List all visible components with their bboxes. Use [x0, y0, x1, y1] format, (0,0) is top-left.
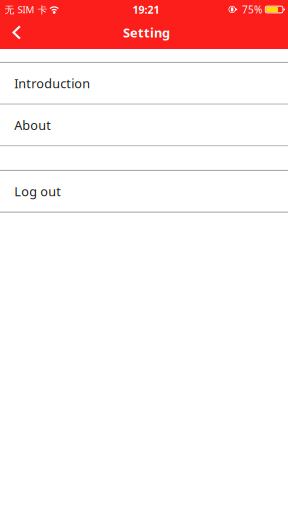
staticText: 75% [242, 3, 262, 16]
button[interactable]: Log out [0, 171, 288, 212]
staticText: Introduction [14, 75, 90, 92]
staticText: 19:21 [132, 2, 159, 17]
staticText: About [14, 116, 51, 134]
staticText: Log out [14, 183, 61, 200]
button[interactable]: Back [0, 19, 44, 49]
staticText: Setting [123, 24, 170, 41]
button[interactable]: Introduction [0, 63, 288, 104]
button[interactable]: About [0, 105, 288, 145]
staticText: 无 SIM 卡 [4, 3, 47, 16]
